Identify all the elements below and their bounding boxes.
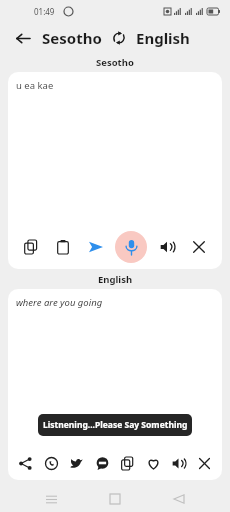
button[interactable]: Paste xyxy=(50,234,76,260)
staticText: where are you going xyxy=(16,296,103,309)
button[interactable]: Twitter xyxy=(65,452,88,475)
button[interactable]: Speak xyxy=(154,234,180,260)
button[interactable]: English xyxy=(136,28,190,48)
button[interactable]: Home xyxy=(102,486,128,512)
button[interactable]: WhatsApp xyxy=(40,452,63,475)
staticText: Sesotho xyxy=(96,56,134,69)
button[interactable]: Copy xyxy=(116,452,139,475)
button[interactable]: Close xyxy=(193,452,216,475)
button[interactable]: Clear xyxy=(186,234,212,260)
button[interactable]: Translate xyxy=(83,234,109,260)
button[interactable]: Microphone xyxy=(115,231,147,263)
button[interactable]: Speak xyxy=(167,452,190,475)
button[interactable]: Back xyxy=(166,486,192,512)
button[interactable]: Share xyxy=(14,452,37,475)
button[interactable]: Back xyxy=(8,24,36,52)
staticText: Listnening...Please Say Something xyxy=(43,419,188,431)
staticText: u ea kae xyxy=(16,79,54,92)
staticText: 01:49 xyxy=(34,6,55,17)
button[interactable]: Recents xyxy=(38,486,64,512)
button[interactable]: Swap languages xyxy=(109,28,129,48)
button[interactable]: Sesotho xyxy=(42,28,102,48)
button[interactable]: Copy xyxy=(18,234,44,260)
button[interactable]: Favourite xyxy=(142,452,165,475)
button[interactable]: SMS xyxy=(91,452,114,475)
staticText: English xyxy=(98,273,133,286)
